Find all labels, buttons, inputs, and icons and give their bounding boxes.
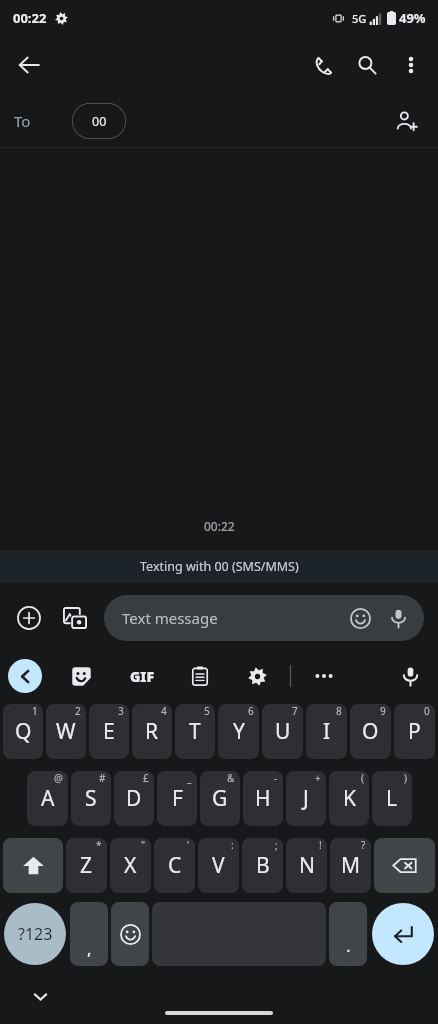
button[interactable]: Q	[3, 704, 43, 759]
button[interactable]: K	[329, 771, 369, 826]
button[interactable]: Gallery and camera	[54, 597, 96, 639]
staticText: R	[145, 717, 159, 746]
button[interactable]: .	[329, 902, 367, 966]
staticText: 4	[161, 704, 167, 718]
staticText: 2	[75, 704, 81, 718]
staticText: _	[187, 771, 192, 785]
button[interactable]: Collapse toolbar	[8, 659, 42, 693]
button[interactable]: M	[330, 838, 371, 893]
button[interactable]: Keyboard settings	[239, 658, 275, 694]
button[interactable]: Shift	[3, 838, 63, 893]
button[interactable]: Text message	[104, 595, 424, 641]
staticText: (	[361, 771, 364, 785]
staticText: GIF	[130, 667, 155, 686]
staticText: Text message	[122, 608, 218, 628]
staticText: S	[85, 784, 97, 813]
button[interactable]: U	[262, 704, 303, 759]
staticText: E	[103, 717, 115, 746]
staticText: ?	[361, 838, 366, 852]
button[interactable]: Back	[7, 43, 51, 87]
button[interactable]: Enter	[372, 903, 434, 965]
button[interactable]: F	[157, 771, 197, 826]
button[interactable]: J	[286, 771, 326, 826]
staticText: "	[141, 838, 146, 852]
button[interactable]: Backspace	[374, 838, 435, 893]
button[interactable]: D	[114, 771, 154, 826]
staticText: To	[14, 111, 31, 131]
button[interactable]: More keyboard options	[306, 658, 342, 694]
staticText: K	[343, 784, 356, 813]
staticText: X	[124, 851, 137, 880]
staticText: Q	[15, 717, 32, 746]
staticText: :	[231, 838, 234, 852]
staticText: 0	[424, 704, 430, 718]
button[interactable]: S	[71, 771, 111, 826]
button[interactable]: Voice typing	[392, 658, 428, 694]
staticText: 9	[380, 704, 386, 718]
button[interactable]: 00	[72, 103, 126, 139]
staticText: 1	[32, 704, 38, 718]
staticText: +	[315, 771, 321, 785]
button[interactable]: Add recipient	[386, 100, 428, 142]
button[interactable]: O	[350, 704, 391, 759]
staticText: '	[187, 838, 190, 852]
staticText: 3	[118, 704, 124, 718]
staticText: O	[362, 717, 379, 746]
button[interactable]: Y	[218, 704, 259, 759]
staticText: ;	[275, 838, 278, 852]
staticText: *	[96, 838, 102, 852]
button[interactable]: C	[154, 838, 195, 893]
button[interactable]: Add attachment	[8, 597, 50, 639]
staticText: J	[303, 784, 309, 813]
staticText: !	[319, 838, 322, 852]
button[interactable]: N	[286, 838, 327, 893]
staticText: )	[404, 771, 407, 785]
button[interactable]: G	[200, 771, 240, 826]
staticText: .	[346, 934, 351, 957]
button[interactable]: Voice message	[382, 602, 414, 634]
button[interactable]: GIF	[120, 654, 164, 698]
staticText: U	[275, 717, 291, 746]
button[interactable]: Stickers	[63, 658, 99, 694]
staticText: 5G	[352, 11, 367, 26]
staticText: 00:22	[204, 518, 235, 534]
button[interactable]: X	[110, 838, 151, 893]
button[interactable]: V	[198, 838, 239, 893]
button[interactable]: E	[89, 704, 129, 759]
button[interactable]: Call	[301, 43, 345, 87]
button[interactable]: Search	[345, 43, 389, 87]
staticText: Texting with 00 (SMS/MMS)	[140, 558, 299, 575]
staticText: ?123	[18, 923, 53, 945]
staticText: ,	[87, 937, 92, 960]
button[interactable]: ?123	[4, 903, 66, 965]
button[interactable]: R	[132, 704, 172, 759]
button[interactable]: P	[394, 704, 435, 759]
button[interactable]: Emoji	[111, 902, 149, 966]
button[interactable]: W	[46, 704, 86, 759]
button[interactable]: A	[27, 771, 68, 826]
button[interactable]: T	[175, 704, 215, 759]
button[interactable]: Clipboard	[182, 658, 218, 694]
button[interactable]: I	[306, 704, 347, 759]
staticText: -	[274, 771, 278, 785]
button[interactable]: ,	[70, 902, 108, 966]
staticText: M	[341, 851, 361, 880]
button[interactable]: H	[243, 771, 283, 826]
staticText: C	[168, 851, 182, 880]
button[interactable]: Emoji	[344, 602, 376, 634]
button[interactable]: More options	[389, 43, 433, 87]
staticText: P	[408, 717, 421, 746]
button[interactable]: Z	[66, 838, 107, 893]
button[interactable]: L	[372, 771, 412, 826]
button[interactable]: B	[242, 838, 283, 893]
staticText: 5	[204, 704, 210, 718]
staticText: G	[212, 784, 228, 813]
button[interactable]: Hide keyboard	[23, 979, 57, 1013]
staticText: N	[299, 851, 315, 880]
staticText: D	[126, 784, 142, 813]
staticText: @	[54, 771, 63, 785]
staticText: 6	[248, 704, 254, 718]
staticText: Z	[80, 851, 93, 880]
staticText: H	[255, 784, 271, 813]
